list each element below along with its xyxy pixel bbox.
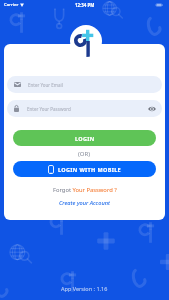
button[interactable]: Forgot Your Password ? bbox=[4, 186, 165, 193]
staticText: LOGIN bbox=[75, 135, 95, 142]
button[interactable]: Create your Account bbox=[4, 199, 165, 206]
button[interactable]: LOGIN bbox=[13, 130, 156, 146]
staticText: Carrier bbox=[4, 2, 19, 8]
staticText: Enter Your Email bbox=[28, 82, 63, 88]
staticText: (OR) bbox=[78, 150, 91, 158]
button[interactable]: Enter Your Password bbox=[7, 100, 162, 117]
staticText: Forgot Your Password ? bbox=[53, 186, 117, 193]
staticText: LOGIN WITH MOBILE bbox=[58, 166, 122, 173]
staticText: Enter Your Password bbox=[27, 106, 71, 112]
staticText: Create your Account bbox=[59, 199, 110, 206]
button[interactable]: Show password bbox=[148, 106, 156, 112]
staticText: 12:34 PM bbox=[75, 2, 95, 8]
staticText: App Version : 1.16 bbox=[61, 285, 108, 292]
button[interactable]: Enter Your Email bbox=[7, 76, 162, 93]
button[interactable]: LOGIN WITH MOBILE bbox=[13, 161, 156, 177]
